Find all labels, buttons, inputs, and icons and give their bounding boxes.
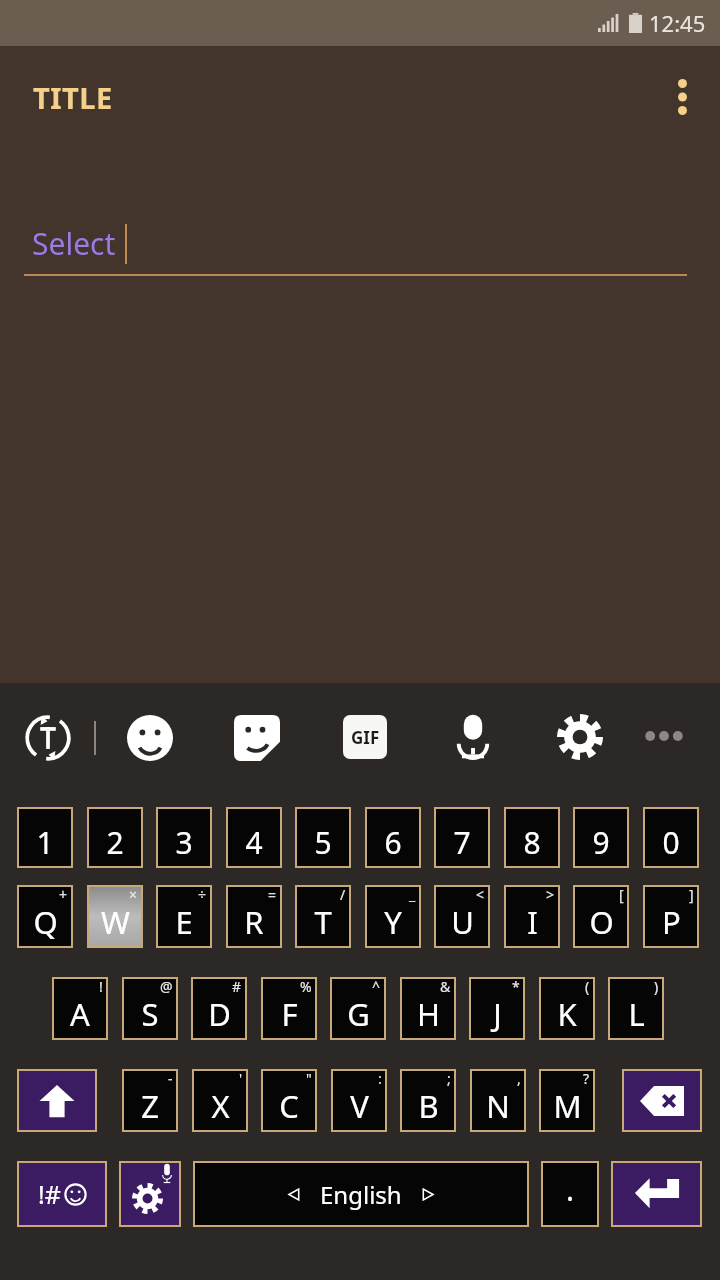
staticText: 12:45 xyxy=(649,8,706,38)
button[interactable]: ) xyxy=(608,977,664,1040)
button[interactable]: * xyxy=(469,977,525,1040)
staticText: < xyxy=(476,885,485,904)
button[interactable]: 4 xyxy=(226,807,282,868)
button[interactable]: < xyxy=(434,885,490,948)
button[interactable]: More options xyxy=(658,73,706,121)
button[interactable]: [ xyxy=(573,885,629,948)
staticText: 9 xyxy=(592,822,610,863)
staticText: J xyxy=(493,993,502,1035)
staticText: Q xyxy=(33,901,58,943)
button[interactable]: 6 xyxy=(365,807,421,868)
staticText: 6 xyxy=(384,822,402,863)
button[interactable]: Backspace xyxy=(622,1069,702,1132)
button[interactable]: + xyxy=(17,885,73,948)
staticText: , xyxy=(517,1069,521,1088)
button[interactable]: Select xyxy=(24,210,687,276)
button[interactable]: 7 xyxy=(434,807,490,868)
staticText: Z xyxy=(141,1085,159,1127)
staticText: @ xyxy=(160,977,173,996)
button[interactable]: ! xyxy=(52,977,108,1040)
staticText: ÷ xyxy=(198,885,207,904)
button[interactable]: = xyxy=(226,885,282,948)
staticText: H xyxy=(417,993,440,1035)
staticText: 4 xyxy=(245,822,263,863)
button[interactable]: Shift xyxy=(17,1069,97,1132)
staticText: O xyxy=(589,901,614,943)
staticText: ^ xyxy=(372,977,381,996)
staticText: _ xyxy=(409,885,416,904)
button[interactable]: _ xyxy=(365,885,421,948)
button[interactable]: , xyxy=(470,1069,526,1132)
button[interactable]: Emoji xyxy=(127,715,173,761)
staticText: I xyxy=(527,901,538,943)
staticText: K xyxy=(557,993,577,1035)
staticText: " xyxy=(306,1069,312,1088)
button[interactable]: Keyboard settings xyxy=(557,714,603,760)
button[interactable]: ÷ xyxy=(156,885,212,948)
staticText: S xyxy=(141,993,159,1035)
button[interactable]: 5 xyxy=(295,807,351,868)
button[interactable]: 3 xyxy=(156,807,212,868)
staticText: ] xyxy=(689,885,694,904)
staticText: T xyxy=(314,901,332,943)
staticText: L xyxy=(628,993,645,1035)
button[interactable]: ^ xyxy=(330,977,386,1040)
button[interactable]: / xyxy=(295,885,351,948)
button[interactable]: Stickers xyxy=(234,715,280,761)
button[interactable]: Symbols and emoji xyxy=(17,1161,107,1227)
button[interactable]: ( xyxy=(539,977,595,1040)
staticText: F xyxy=(281,993,298,1035)
staticText: 2 xyxy=(106,822,124,863)
button[interactable]: Voice input xyxy=(450,713,496,759)
staticText: M xyxy=(553,1085,582,1127)
staticText: . xyxy=(566,1169,575,1210)
staticText: ( xyxy=(585,977,590,996)
button[interactable]: " xyxy=(261,1069,317,1132)
staticText: [ xyxy=(619,885,624,904)
staticText: V xyxy=(350,1085,369,1127)
staticText: 7 xyxy=(453,822,471,863)
button[interactable]: Enter xyxy=(611,1161,702,1227)
button[interactable]: ? xyxy=(539,1069,595,1132)
button[interactable]: - xyxy=(122,1069,178,1132)
button[interactable]: Translate xyxy=(22,712,74,764)
button[interactable]: > xyxy=(504,885,560,948)
staticText: N xyxy=(486,1085,510,1127)
button[interactable]: GIF xyxy=(343,715,387,759)
button[interactable]: . xyxy=(541,1161,599,1227)
staticText: 5 xyxy=(314,822,332,863)
button[interactable]: ; xyxy=(400,1069,456,1132)
staticText: % xyxy=(300,977,312,996)
button[interactable]: 8 xyxy=(504,807,560,868)
staticText: TITLE xyxy=(33,78,113,117)
button[interactable]: 2 xyxy=(87,807,143,868)
staticText: # xyxy=(232,977,242,996)
staticText: E xyxy=(175,901,193,943)
button[interactable]: % xyxy=(261,977,317,1040)
staticText: P xyxy=(662,901,681,943)
staticText: ? xyxy=(583,1069,590,1088)
button[interactable]: & xyxy=(400,977,456,1040)
staticText: !# xyxy=(38,1177,61,1211)
staticText: ; xyxy=(447,1069,451,1088)
button[interactable]: 0 xyxy=(643,807,699,868)
staticText: U xyxy=(451,901,474,943)
button[interactable]: : xyxy=(331,1069,387,1132)
staticText: : xyxy=(378,1069,382,1088)
button[interactable]: More xyxy=(641,723,687,749)
button[interactable]: × xyxy=(87,885,143,948)
button[interactable]: ' xyxy=(192,1069,248,1132)
button[interactable]: # xyxy=(191,977,247,1040)
button[interactable]: @ xyxy=(122,977,178,1040)
staticText: Select xyxy=(32,223,116,264)
button[interactable]: ] xyxy=(643,885,699,948)
staticText: × xyxy=(129,885,138,904)
staticText: R xyxy=(244,901,264,943)
staticText: > xyxy=(546,885,555,904)
button[interactable]: Keyboard settings xyxy=(119,1161,181,1227)
button[interactable]: 1 xyxy=(17,807,73,868)
staticText: English xyxy=(320,1178,402,1211)
button[interactable]: English xyxy=(193,1161,529,1227)
button[interactable]: 9 xyxy=(573,807,629,868)
staticText: 1 xyxy=(36,822,54,863)
